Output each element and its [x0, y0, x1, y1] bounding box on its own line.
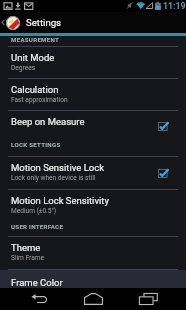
button[interactable]: Unit Mode [0, 47, 186, 78]
button[interactable]: Frame Color [0, 270, 186, 288]
staticText: MEASUREMENT [11, 36, 60, 43]
staticText: Frame Color [11, 277, 63, 288]
button[interactable]: Theme [0, 237, 186, 269]
staticText: Settings [26, 17, 62, 28]
staticText: Medium (±0.5") [11, 207, 56, 215]
staticText: Calculation [11, 84, 59, 95]
button[interactable]: Recent apps [129, 288, 167, 310]
staticText: LOCK SETTINGS [11, 141, 61, 148]
button[interactable]: Calculation [0, 79, 186, 110]
button[interactable]: Home [74, 288, 112, 310]
staticText: Theme [11, 242, 41, 253]
staticText: Unit Mode [11, 52, 55, 63]
staticText: Lock only when device is still [11, 174, 96, 182]
staticText: 11:19 [163, 1, 186, 11]
staticText: Degrees [11, 64, 36, 72]
staticText: Beep on Measure [11, 116, 85, 127]
staticText: Fast approximation [11, 96, 68, 104]
staticText: Slim Frame [11, 254, 45, 262]
staticText: Motion Lock Sensitivity [11, 195, 109, 206]
staticText: Motion Sensitive Lock [11, 162, 104, 173]
button[interactable]: Motion Sensitive Lock [0, 157, 186, 189]
staticText: USER INTERFACE [11, 223, 64, 230]
button[interactable]: Back [20, 288, 58, 310]
button[interactable]: Motion Lock Sensitivity [0, 190, 186, 217]
button[interactable]: Beep on Measure [0, 111, 186, 134]
